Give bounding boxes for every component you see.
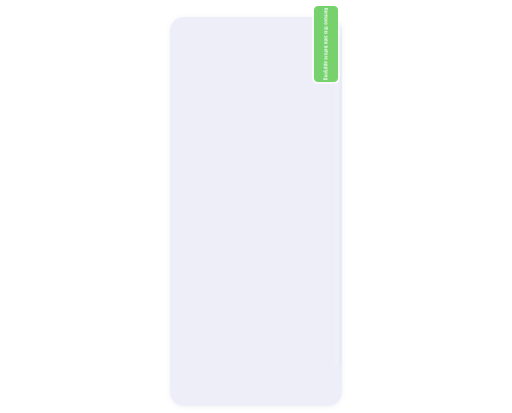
button[interactable]: Remove this side before applying bbox=[312, 4, 340, 84]
staticText: Remove this side before applying bbox=[239, 37, 412, 51]
